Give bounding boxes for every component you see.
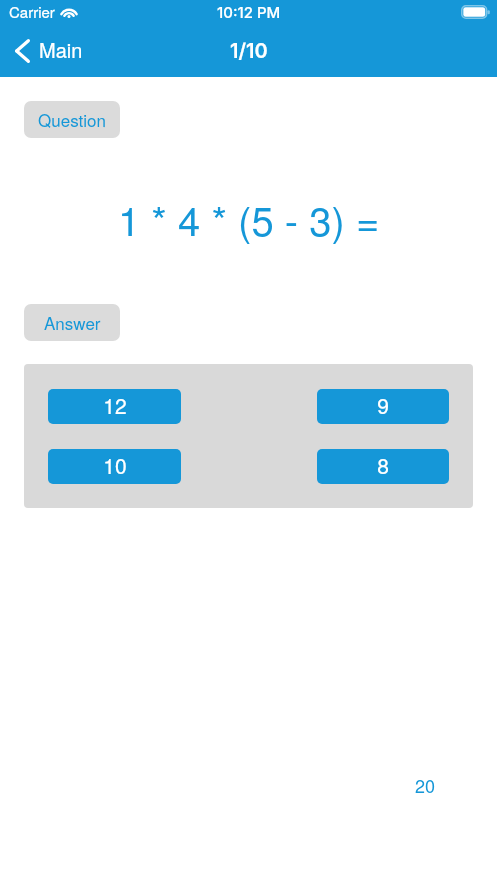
other: Battery full: [461, 5, 490, 19]
button[interactable]: 10: [48, 449, 181, 484]
staticText: 10: [103, 450, 127, 480]
staticText: 10:12 PM: [217, 3, 281, 21]
button[interactable]: 12: [48, 389, 181, 424]
staticText: 20: [415, 772, 436, 798]
button[interactable]: 8: [317, 449, 449, 484]
button[interactable]: Back: [0, 33, 95, 68]
button[interactable]: Question: [24, 101, 120, 138]
staticText: 9: [377, 390, 389, 420]
button[interactable]: Answer: [24, 304, 120, 341]
staticText: 8: [377, 450, 389, 480]
staticText: Question: [38, 107, 106, 131]
staticText: 12: [103, 390, 127, 420]
button[interactable]: 9: [317, 389, 449, 424]
staticText: Answer: [44, 310, 101, 334]
staticText: 1/10: [230, 39, 268, 63]
staticText: 1 * 4 * (5 - 3) =: [118, 190, 380, 247]
staticText: Carrier: [9, 1, 55, 22]
other: Back: [15, 39, 30, 63]
staticText: Main: [39, 35, 83, 64]
